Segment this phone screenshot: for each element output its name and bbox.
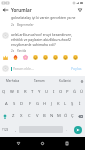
button[interactable]: O <box>57 86 64 98</box>
staticText: X <box>20 113 23 119</box>
button[interactable]: Emoji <box>10 53 20 62</box>
button[interactable]: Comma <box>11 122 19 137</box>
staticText: Ü <box>80 89 84 95</box>
staticText: A <box>5 101 8 107</box>
button[interactable]: Tamam <box>26 76 52 86</box>
button[interactable]: K <box>55 98 62 110</box>
staticText: G <box>36 101 40 107</box>
button[interactable]: N <box>48 110 55 122</box>
button[interactable]: Backspace <box>76 110 85 122</box>
staticText: Kullanici <box>59 79 72 83</box>
staticText: gokselatalay iyi ki varsin gercekten ya … <box>11 15 76 20</box>
staticText: Merhaba <box>6 79 20 83</box>
button[interactable]: Back <box>0 6 11 14</box>
staticText: , <box>15 127 16 132</box>
button[interactable]: X <box>17 110 25 122</box>
staticText: Yanitla <box>17 49 27 53</box>
staticText: Q <box>2 89 6 95</box>
staticText: T <box>31 89 34 95</box>
button[interactable]: Send <box>71 122 85 137</box>
button[interactable]: Recents <box>61 138 72 149</box>
staticText: W <box>10 89 14 95</box>
button[interactable]: Emoji <box>70 53 80 62</box>
button[interactable]: Merhaba <box>0 76 26 86</box>
button[interactable]: E <box>15 86 22 98</box>
staticText: U <box>45 89 49 95</box>
button[interactable]: I <box>50 86 57 98</box>
button[interactable]: Q <box>0 86 8 98</box>
button[interactable]: Emoji <box>30 53 40 62</box>
button[interactable]: Voice input <box>78 76 85 86</box>
button[interactable]: R <box>22 86 29 98</box>
staticText: B <box>43 113 46 119</box>
staticText: O <box>59 89 63 95</box>
button[interactable]: Paylas <box>70 66 83 71</box>
button[interactable]: Emoji <box>0 53 10 62</box>
button[interactable]: V <box>33 110 41 122</box>
button[interactable]: J <box>48 98 55 110</box>
button[interactable]: D <box>18 98 26 110</box>
staticText: ?123 <box>2 128 9 132</box>
staticText: Z <box>12 113 15 119</box>
button[interactable]: Emoji <box>50 53 60 62</box>
button[interactable]: Ş <box>69 98 76 110</box>
staticText: Ğ <box>73 89 77 95</box>
button[interactable]: Y <box>36 86 43 98</box>
button[interactable]: T <box>29 86 36 98</box>
staticText: R <box>24 89 27 95</box>
button[interactable]: F <box>26 98 34 110</box>
button[interactable]: Home <box>37 138 48 149</box>
staticText: Tamam <box>34 79 45 83</box>
staticText: 2s <box>11 49 15 53</box>
button[interactable]: U <box>43 86 50 98</box>
staticText: F <box>29 101 32 107</box>
button[interactable]: M <box>55 110 62 122</box>
staticText: Yorum ekle... <box>13 66 34 71</box>
button[interactable]: G <box>34 98 41 110</box>
button[interactable]: S <box>10 98 18 110</box>
button[interactable]: A <box>2 98 10 110</box>
button[interactable]: L <box>62 98 69 110</box>
button[interactable]: Emoji <box>20 53 30 62</box>
staticText: Begenmeler <box>17 23 34 27</box>
staticText: P <box>66 89 69 95</box>
staticText: M <box>57 113 61 119</box>
button[interactable]: Z <box>9 110 17 122</box>
button[interactable]: Shift <box>0 110 9 122</box>
button[interactable]: Kullanici <box>52 76 78 86</box>
staticText: K <box>57 101 60 107</box>
button[interactable]: İ <box>76 98 83 110</box>
button[interactable]: C <box>25 110 33 122</box>
staticText: S <box>13 101 16 107</box>
button[interactable]: Ğ <box>71 86 78 98</box>
button[interactable]: Emoji <box>40 53 50 62</box>
button[interactable]: Share <box>74 6 85 14</box>
staticText: Y <box>38 89 41 95</box>
staticText: E <box>17 89 20 95</box>
button[interactable]: Back <box>13 138 24 149</box>
staticText: I <box>53 89 55 95</box>
staticText: Ö <box>64 113 68 119</box>
button[interactable]: ?123 <box>0 122 11 137</box>
staticText: N <box>50 113 54 119</box>
staticText: . <box>66 127 67 132</box>
button[interactable]: Ç <box>69 110 76 122</box>
staticText: Yorumlar <box>11 7 32 13</box>
button[interactable]: Emoji <box>60 53 70 62</box>
staticText: 2s <box>11 23 15 27</box>
button[interactable]: B <box>41 110 48 122</box>
staticText: C <box>28 113 31 119</box>
staticText: L <box>64 101 67 107</box>
button[interactable]: Ö <box>62 110 69 122</box>
staticText: D <box>20 101 24 107</box>
staticText: Paylas <box>71 66 82 71</box>
staticText: İ <box>79 101 81 107</box>
button[interactable]: W <box>8 86 15 98</box>
button[interactable]: H <box>41 98 48 110</box>
staticText: J <box>51 101 53 107</box>
staticText: aeleLarlibunushoof eruyt kesandirsen, et… <box>11 32 81 47</box>
button[interactable]: P <box>64 86 71 98</box>
button[interactable]: Ü <box>78 86 85 98</box>
